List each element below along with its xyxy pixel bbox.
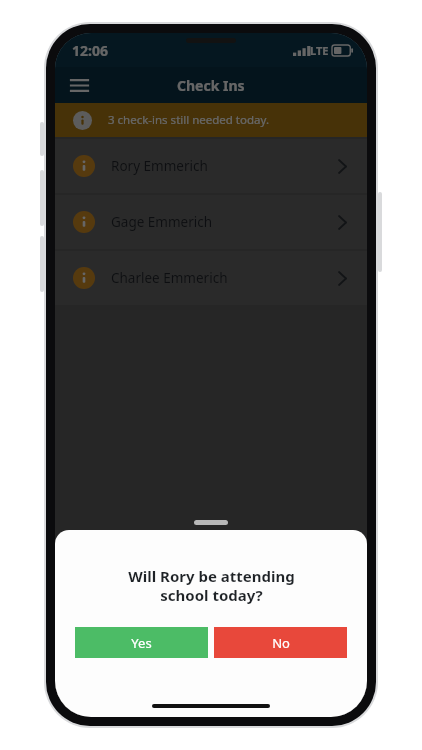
staticText: Will Rory be attending school today? xyxy=(128,566,295,605)
staticText: Yes xyxy=(131,634,152,652)
staticText: 12:06 xyxy=(72,41,108,60)
staticText: Check Ins xyxy=(177,76,245,95)
button[interactable]: Charlee Emmerich xyxy=(55,251,367,305)
button[interactable]: Rory Emmerich xyxy=(55,139,367,193)
button[interactable]: Gage Emmerich xyxy=(55,195,367,249)
staticText: Charlee Emmerich xyxy=(111,269,338,287)
staticText: Rory Emmerich xyxy=(111,157,338,175)
staticText: 3 check-ins still needed today. xyxy=(108,112,269,128)
staticText: No xyxy=(272,634,290,652)
staticText: LTE xyxy=(310,43,329,58)
button[interactable]: Yes xyxy=(75,627,208,658)
button[interactable]: Menu xyxy=(62,68,96,102)
staticText: Gage Emmerich xyxy=(111,213,338,231)
button[interactable]: No xyxy=(214,627,347,658)
